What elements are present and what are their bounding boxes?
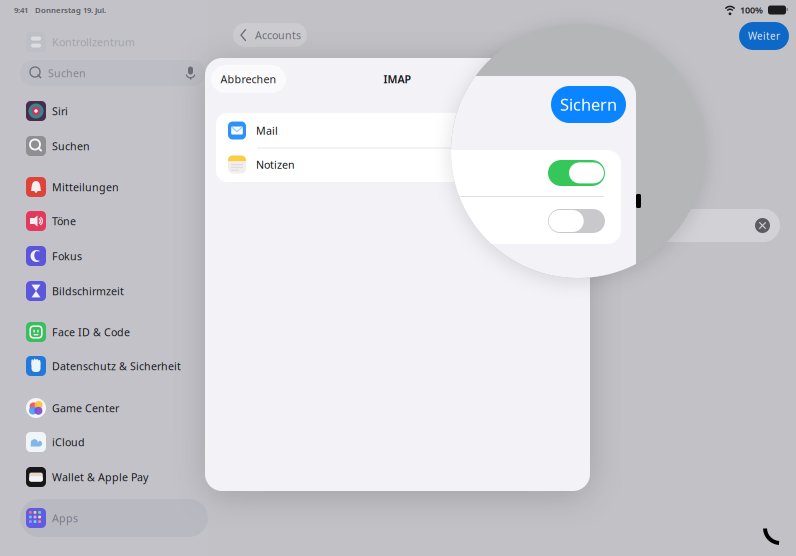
staticText: Apps bbox=[52, 511, 78, 525]
button[interactable]: Sichern bbox=[551, 86, 626, 123]
staticText: Kontrollzentrum bbox=[52, 35, 135, 49]
button[interactable]: Notizen bbox=[216, 147, 579, 182]
button[interactable]: Siri bbox=[20, 96, 208, 126]
staticText: Face ID & Code bbox=[52, 325, 130, 339]
staticText: Accounts bbox=[255, 28, 301, 42]
button[interactable]: Suchen bbox=[20, 131, 208, 161]
button[interactable]: Abbrechen bbox=[211, 65, 286, 93]
staticText: Datenschutz & Sicherheit bbox=[52, 359, 181, 373]
staticText: Weiter bbox=[748, 29, 780, 43]
staticText: Töne bbox=[52, 214, 76, 228]
button[interactable]: Datenschutz & Sicherheit bbox=[20, 351, 208, 381]
button[interactable]: Accounts bbox=[233, 23, 307, 47]
button[interactable]: Deaktiviert bbox=[548, 209, 605, 233]
staticText: Sichern bbox=[560, 93, 617, 116]
staticText: Notizen bbox=[256, 157, 295, 172]
button[interactable]: Bildschirmzeit bbox=[20, 276, 208, 306]
staticText: 9:41 bbox=[14, 5, 28, 15]
button[interactable]: Wallet & Apple Pay bbox=[20, 462, 208, 492]
staticText: iCloud bbox=[52, 435, 85, 449]
staticText: Wallet & Apple Pay bbox=[52, 470, 148, 484]
button[interactable]: Fokus bbox=[20, 241, 208, 271]
staticText: Suchen bbox=[52, 139, 90, 153]
staticText: Suchen bbox=[48, 66, 86, 80]
staticText: 100% bbox=[740, 4, 763, 16]
button[interactable]: Apps bbox=[20, 499, 208, 537]
button[interactable]: iCloud bbox=[20, 427, 208, 457]
button[interactable]: Game Center bbox=[20, 393, 208, 423]
staticText: Siri bbox=[52, 104, 68, 118]
staticText: Abbrechen bbox=[220, 72, 276, 86]
staticText: Mail bbox=[256, 123, 278, 138]
button[interactable]: Töne bbox=[20, 206, 208, 236]
staticText: Mitteilungen bbox=[52, 180, 119, 194]
staticText: IMAP bbox=[383, 72, 411, 86]
button[interactable]: Aktiviert bbox=[548, 160, 605, 186]
button[interactable]: Mitteilungen bbox=[20, 172, 208, 202]
staticText: Donnerstag 19. Jul. bbox=[35, 5, 106, 15]
button[interactable]: Face ID & Code bbox=[20, 317, 208, 347]
staticText: Bildschirmzeit bbox=[52, 284, 124, 298]
button[interactable]: Mail bbox=[216, 113, 579, 148]
button[interactable]: Weiter bbox=[739, 22, 789, 50]
staticText: Game Center bbox=[52, 401, 119, 415]
staticText: Fokus bbox=[52, 249, 82, 263]
